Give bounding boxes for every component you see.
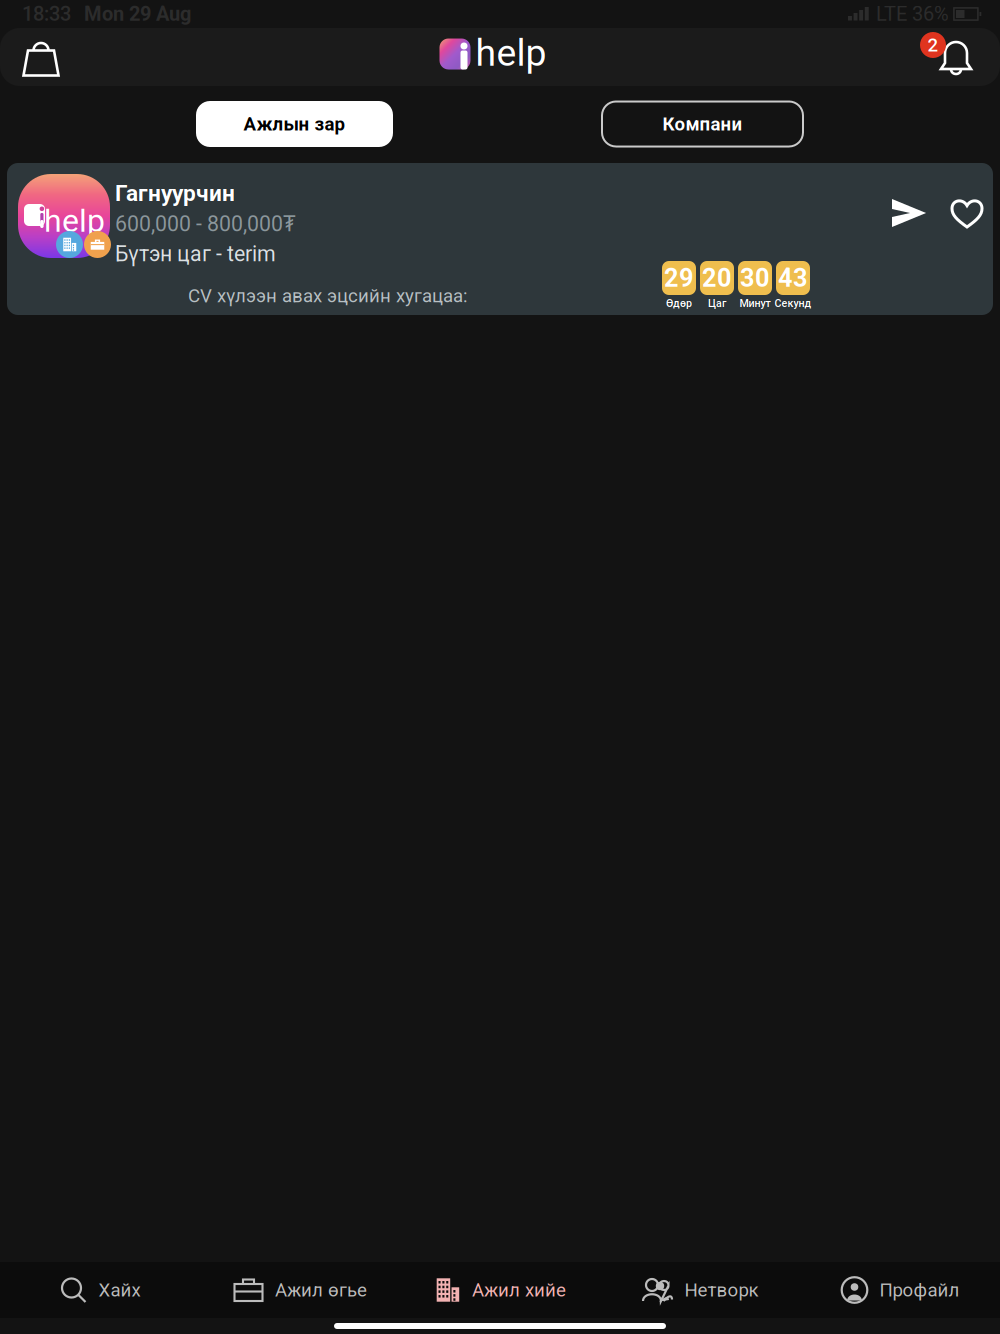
- staticText: Гагнуурчин: [115, 180, 235, 207]
- button[interactable]: Notifications: [920, 28, 978, 86]
- staticText: help: [44, 202, 105, 239]
- staticText: Цаг: [708, 297, 726, 309]
- staticText: help: [475, 31, 546, 75]
- button[interactable]: Apply for this job: [887, 191, 931, 235]
- staticText: 29: [664, 263, 694, 293]
- staticText: Бүтэн цаг - terim: [115, 242, 276, 267]
- staticText: Өдөр: [666, 297, 692, 309]
- staticText: 600,000 - 800,000₮: [115, 212, 296, 237]
- button[interactable]: Профайл: [800, 1262, 1000, 1318]
- staticText: Ажил өгье: [275, 1279, 367, 1301]
- staticText: Хайх: [98, 1279, 140, 1301]
- staticText: Профайл: [879, 1279, 959, 1301]
- staticText: Нетворк: [684, 1279, 758, 1301]
- staticText: 30: [740, 263, 770, 293]
- button[interactable]: Shopping bag: [12, 28, 70, 86]
- staticText: Секунд: [774, 297, 811, 309]
- staticText: Ажлын зар: [243, 113, 345, 135]
- staticText: Mon 29 Aug: [84, 2, 191, 26]
- staticText: CV хүлээн авах эцсийн хугацаа:: [188, 285, 468, 307]
- staticText: Минут: [739, 297, 770, 309]
- staticText: LTE 36%: [876, 2, 949, 26]
- staticText: Ажил хийе: [472, 1279, 566, 1301]
- staticText: 20: [702, 263, 732, 293]
- button[interactable]: Хайх: [0, 1262, 200, 1318]
- staticText: 2: [927, 34, 938, 56]
- button[interactable]: Ажил өгье: [200, 1262, 400, 1318]
- button[interactable]: help: [7, 163, 993, 315]
- button[interactable]: Ажлын зар: [196, 101, 393, 147]
- button[interactable]: Save job: [945, 191, 989, 235]
- staticText: 18:33: [22, 2, 71, 26]
- button[interactable]: Нетворк: [600, 1262, 800, 1318]
- button[interactable]: Компани: [602, 101, 803, 146]
- staticText: Компани: [662, 113, 742, 135]
- button[interactable]: Ажил хийе: [400, 1262, 600, 1318]
- staticText: 43: [778, 263, 808, 293]
